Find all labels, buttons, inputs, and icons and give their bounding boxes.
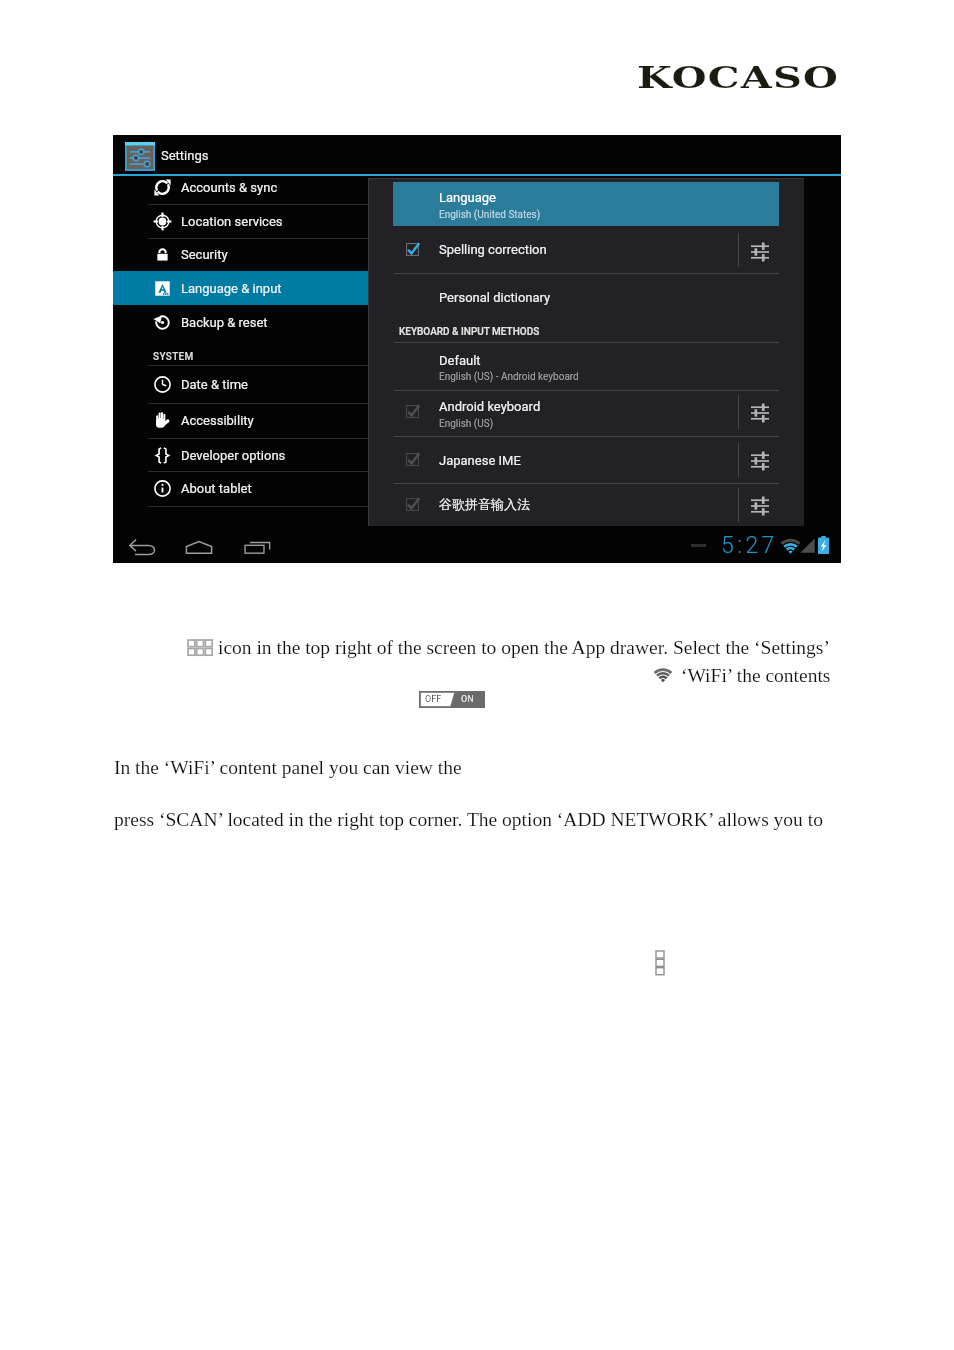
staticText: Japanese IME — [439, 453, 521, 468]
staticText: Date & time — [181, 377, 248, 392]
staticText: Personal dictionary — [439, 290, 551, 305]
button[interactable]: Back — [123, 533, 161, 561]
button[interactable]: 谷歌拼音输入法 — [368, 483, 804, 526]
staticText: English (US) — [439, 418, 494, 430]
button[interactable]: WiFi on off switch — [419, 691, 485, 708]
staticText: Backup & reset — [181, 315, 268, 330]
staticText: Accessibility — [181, 413, 254, 428]
button[interactable]: Personal dictionary — [368, 274, 804, 320]
button[interactable]: Language & input — [113, 271, 368, 305]
button[interactable]: Recent apps — [238, 533, 276, 561]
staticText: In the ‘WiFi’ content panel you can view… — [114, 757, 462, 779]
staticText: icon in the top right of the screen to o… — [218, 637, 830, 659]
staticText: 谷歌拼音输入法 — [439, 496, 530, 512]
staticText: English (United States) — [439, 209, 541, 221]
staticText: Accounts & sync — [181, 180, 278, 195]
staticText: 5:27 — [721, 532, 778, 559]
button[interactable]: Android keyboard — [368, 390, 804, 436]
staticText: ON — [461, 694, 474, 705]
button[interactable]: Input method settings — [742, 489, 778, 523]
button[interactable]: Language — [393, 182, 779, 226]
staticText: KOCASO — [637, 59, 840, 95]
button[interactable]: Spelling correction — [368, 226, 804, 273]
staticText: Security — [181, 247, 228, 262]
staticText: SYSTEM — [153, 351, 194, 363]
button[interactable]: Developer options — [113, 438, 368, 472]
staticText: Location services — [181, 214, 283, 229]
button[interactable]: Settings — [161, 148, 209, 163]
staticText: About tablet — [181, 481, 252, 496]
staticText: Language — [439, 190, 496, 205]
staticText: ‘WiFi’ the contents — [681, 665, 831, 687]
button[interactable]: Accessibility — [113, 403, 368, 438]
button[interactable]: Accounts & sync — [113, 170, 368, 204]
staticText: Android keyboard — [439, 399, 541, 414]
staticText: KEYBOARD & INPUT METHODS — [399, 326, 540, 338]
button[interactable]: Japanese IME — [368, 437, 804, 483]
button[interactable]: Location services — [113, 204, 368, 238]
staticText: Default — [439, 353, 481, 368]
button[interactable]: Input method settings — [742, 396, 778, 430]
staticText: English (US) - Android keyboard — [439, 371, 579, 383]
staticText: press ‘SCAN’ located in the right top co… — [114, 809, 823, 831]
button[interactable]: Date & time — [113, 366, 368, 403]
button[interactable]: Backup & reset — [113, 305, 368, 339]
button[interactable]: Home — [180, 533, 218, 561]
staticText: Developer options — [181, 448, 286, 463]
button[interactable]: Input method settings — [742, 235, 778, 269]
staticText: OFF — [425, 694, 442, 705]
button[interactable]: Default — [368, 342, 804, 390]
button[interactable]: Security — [113, 238, 368, 271]
button[interactable]: Input method settings — [742, 444, 778, 478]
staticText: Language & input — [181, 281, 282, 296]
staticText: Spelling correction — [439, 242, 547, 257]
button[interactable]: About tablet — [113, 471, 368, 506]
